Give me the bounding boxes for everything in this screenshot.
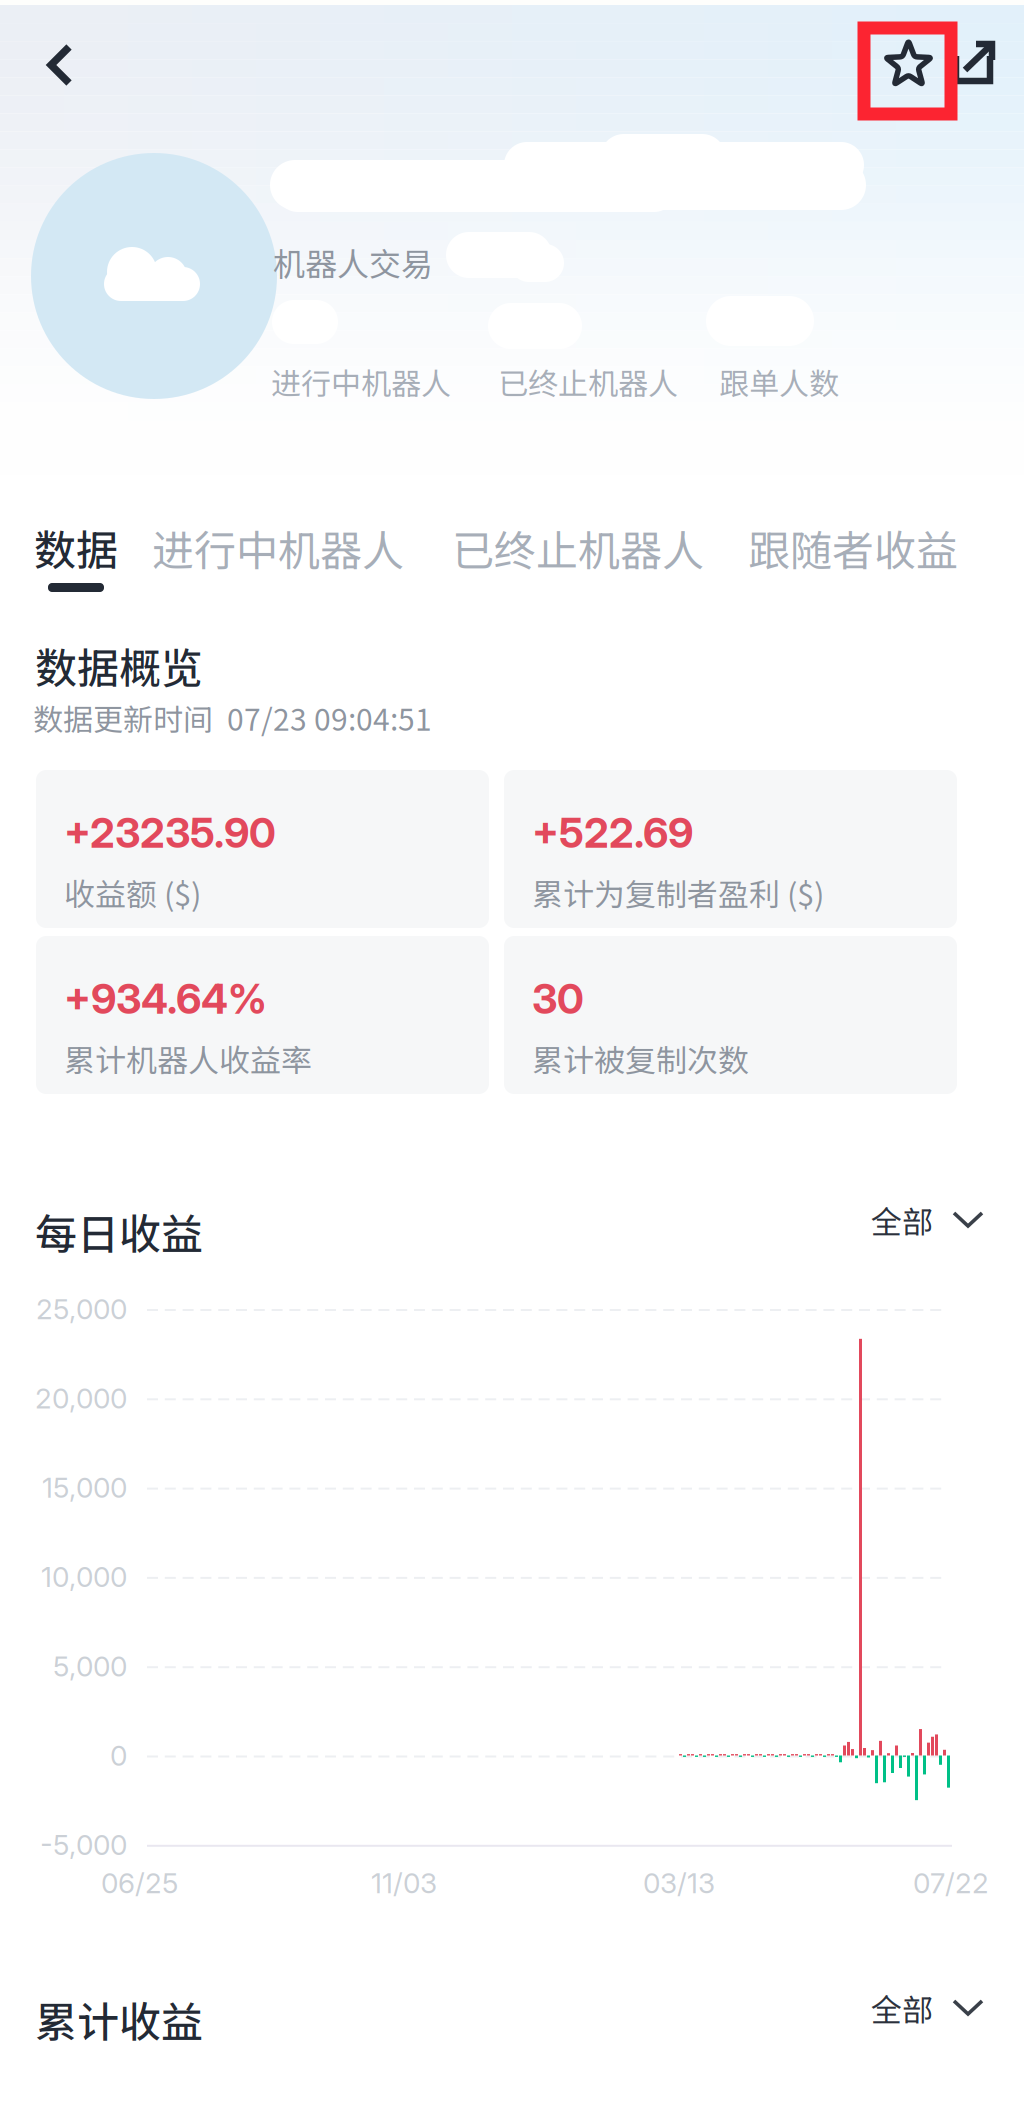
button[interactable]: 已终止机器人	[452, 517, 710, 579]
staticText: 30	[532, 974, 584, 1024]
staticText: 数据更新时间 07/23 09:04:51	[33, 696, 432, 739]
staticText: 累计为复制者盈利 ($)	[532, 870, 824, 915]
button[interactable]: 全部	[855, 1983, 985, 2033]
staticText: 已终止机器人	[452, 518, 704, 578]
staticText: -5,000	[40, 1828, 127, 1862]
staticText: 机器人交易	[273, 239, 433, 285]
staticText: 进行中机器人	[271, 360, 451, 403]
staticText: 07/22	[913, 1866, 989, 1900]
staticText: +522.69	[532, 808, 693, 858]
staticText: 全部	[871, 1986, 933, 2030]
staticText: 0	[110, 1739, 127, 1772]
staticText: 累计被复制次数	[532, 1036, 749, 1081]
staticText: 数据概览	[35, 635, 203, 696]
staticText: 06/25	[101, 1866, 178, 1900]
staticText: 03/13	[643, 1866, 715, 1900]
staticText: +23235.90	[64, 808, 276, 858]
staticText: 进行中机器人	[152, 518, 404, 578]
staticText: 累计收益	[35, 1989, 203, 2050]
staticText: 全部	[871, 1198, 933, 1242]
button[interactable]: Share	[942, 13, 1008, 113]
staticText: 10,000	[41, 1560, 127, 1594]
button[interactable]: Back	[12, 17, 108, 113]
staticText: 已终止机器人	[498, 360, 678, 403]
button[interactable]: 进行中机器人	[152, 517, 410, 579]
staticText: 累计机器人收益率	[64, 1036, 312, 1081]
staticText: 5,000	[53, 1649, 127, 1683]
staticText: 11/03	[371, 1866, 437, 1900]
staticText: 每日收益	[35, 1201, 203, 1262]
staticText: 15,000	[42, 1471, 127, 1505]
button[interactable]: Favorite	[859, 15, 959, 115]
staticText: 跟单人数	[719, 360, 839, 403]
staticText: 20,000	[35, 1381, 127, 1415]
staticText: 25,000	[36, 1292, 127, 1326]
button[interactable]: 跟随者收益	[748, 517, 964, 579]
button[interactable]: 数据	[34, 517, 120, 613]
staticText: 数据	[34, 517, 118, 578]
staticText: 跟随者收益	[748, 518, 958, 578]
staticText: +934.64%	[64, 974, 267, 1024]
staticText: 收益额 ($)	[64, 870, 201, 915]
button[interactable]: 全部	[855, 1195, 985, 1245]
